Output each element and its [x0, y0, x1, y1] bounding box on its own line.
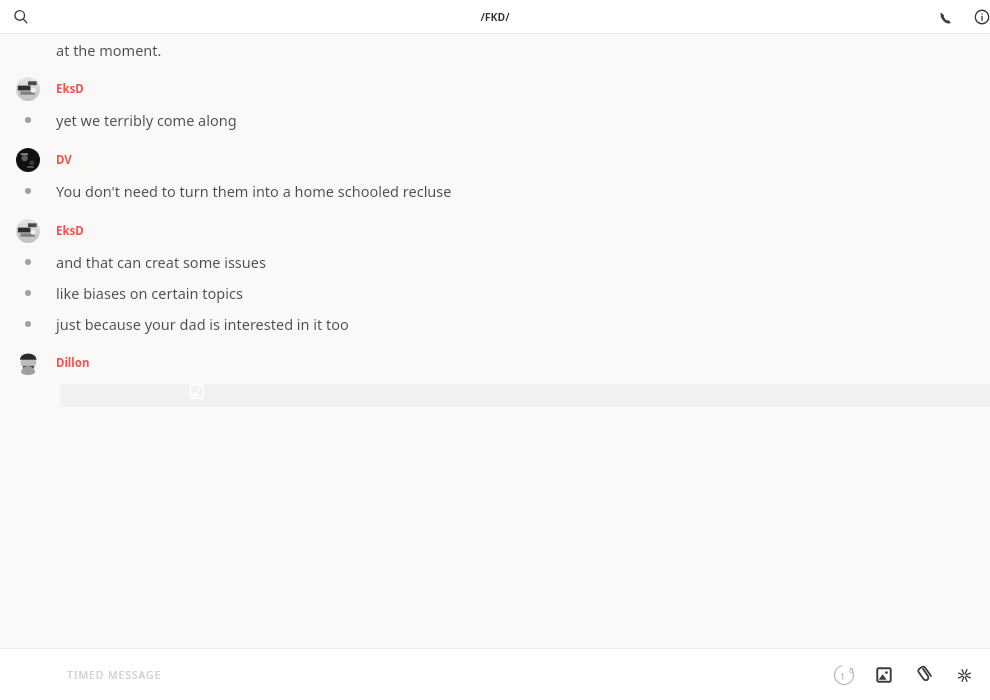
staticText: DV	[56, 152, 72, 168]
staticText: just because your dad is interested in i…	[56, 314, 349, 334]
button[interactable]: and that can creat some issues	[0, 246, 990, 277]
staticText: /FKD/	[480, 10, 510, 24]
staticText: and that can creat some issues	[56, 252, 266, 272]
staticText: You don't need to turn them into a home …	[56, 181, 452, 201]
button[interactable]: Send image	[864, 655, 904, 695]
button[interactable]: Timed message	[824, 655, 864, 695]
button[interactable]: Attach file	[904, 655, 944, 695]
button[interactable]: EksD	[0, 74, 990, 104]
staticText: Dillon	[56, 355, 90, 371]
staticText: like biases on certain topics	[56, 283, 243, 303]
button[interactable]: EksD	[0, 216, 990, 246]
other: Image attachment	[189, 384, 204, 399]
staticText: TIMED MESSAGE	[67, 668, 162, 682]
button[interactable]: Search	[9, 5, 33, 29]
staticText: EksD	[56, 81, 84, 97]
button[interactable]: at the moment.	[0, 35, 990, 65]
button[interactable]: Dillon	[0, 348, 990, 378]
staticText: EksD	[56, 223, 84, 239]
button[interactable]: just because your dad is interested in i…	[0, 308, 990, 339]
button[interactable]: You don't need to turn them into a home …	[0, 175, 990, 206]
staticText: at the moment.	[56, 40, 162, 60]
button[interactable]: Info	[967, 2, 990, 32]
staticText: 1	[840, 670, 846, 682]
button[interactable]: More options	[944, 655, 984, 695]
staticText: d	[849, 665, 854, 675]
button[interactable]: Call	[930, 2, 960, 32]
button[interactable]: like biases on certain topics	[0, 277, 990, 308]
button[interactable]: yet we terribly come along	[0, 104, 990, 135]
button[interactable]: DV	[0, 145, 990, 175]
staticText: yet we terribly come along	[56, 110, 237, 130]
